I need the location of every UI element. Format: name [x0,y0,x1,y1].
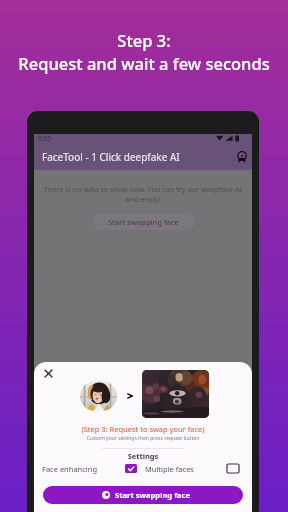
button[interactable]: Start swapping face [43,486,243,504]
button[interactable]: Face enhancing [38,460,128,477]
staticText: Request and wait a few seconds [18,52,270,74]
staticText: Custom your settings then press request … [34,435,252,442]
button[interactable]: Start swapping face [93,214,194,230]
button[interactable]: Premium [232,147,252,167]
staticText: FaceTool - 1 Click deepfake AI [42,150,180,164]
button[interactable]: Multiple faces, checked [121,460,198,477]
staticText: 6:05 [38,134,51,143]
staticText: There is no data to show now. You can tr… [39,184,247,204]
button[interactable]: Face enhancing toggle [222,460,243,477]
staticText: Start swapping face [115,490,191,500]
staticText: Step 3: [117,29,171,51]
staticText: Face enhancing [42,464,98,474]
staticText: Multiple faces [145,464,194,474]
button[interactable]: Target image [142,370,209,418]
button[interactable]: Source face [80,381,117,411]
staticText: (Step 3: Request to swap your face) [34,424,252,434]
staticText: Settings [34,451,252,461]
button[interactable]: Close [38,363,59,384]
staticText: Start swapping face [108,217,179,227]
